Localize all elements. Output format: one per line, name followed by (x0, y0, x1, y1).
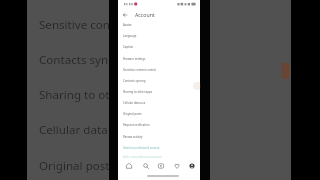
staticText: Sharing to other apps (123, 90, 153, 94)
button[interactable]: Request verification (123, 119, 195, 130)
staticText: Avatar (123, 23, 132, 27)
button[interactable]: Switch to professional account (123, 142, 195, 153)
button[interactable]: Contacts syncing (123, 75, 195, 86)
staticText: Language (123, 34, 137, 38)
staticText: Request verification (123, 123, 150, 127)
staticText: Switch to professional account (123, 146, 160, 149)
staticText: Cellular data use (39, 122, 109, 138)
button[interactable]: Sharing to other apps (123, 86, 195, 97)
button[interactable]: Cellular data use (39, 121, 109, 139)
button[interactable]: Add a new professional account (123, 152, 195, 162)
staticText: Sensitive content control (39, 17, 109, 33)
button[interactable]: Cellular data use (123, 97, 195, 108)
staticText: Contacts syncing (39, 52, 109, 68)
staticText: Browser settings (123, 57, 146, 61)
button[interactable]: Review activity (123, 131, 195, 142)
button[interactable]: Language (123, 30, 195, 41)
staticText: Review activity (123, 135, 143, 139)
staticText: Original posts (123, 112, 142, 116)
button[interactable]: Profile (187, 161, 197, 171)
staticText: Cellular data use (123, 101, 146, 105)
button[interactable]: Home (124, 161, 134, 171)
button[interactable]: Reels (156, 161, 166, 171)
button[interactable]: Back (120, 10, 129, 19)
button[interactable]: Sharing to other apps (39, 86, 109, 104)
button[interactable]: Caption (123, 41, 195, 52)
button[interactable]: Original posts (123, 108, 195, 119)
button[interactable]: Avatar (123, 19, 195, 30)
staticText: Caption (123, 45, 134, 49)
button[interactable]: Likes (172, 161, 182, 171)
staticText: Sharing to other apps (39, 87, 109, 103)
button[interactable]: Browser settings (123, 53, 195, 64)
button[interactable]: Sensitive content control (123, 64, 195, 75)
button[interactable]: Original posts (39, 157, 109, 175)
staticText: Sensitive content control (123, 68, 157, 72)
staticText: Add a new professional account (123, 155, 162, 159)
button[interactable]: Sensitive content control (39, 16, 109, 34)
staticText: Account (135, 11, 155, 18)
staticText: Contacts syncing (123, 79, 146, 83)
button[interactable]: Search (141, 161, 151, 171)
staticText: Original posts (39, 158, 109, 174)
button[interactable]: Contacts syncing (39, 51, 109, 69)
